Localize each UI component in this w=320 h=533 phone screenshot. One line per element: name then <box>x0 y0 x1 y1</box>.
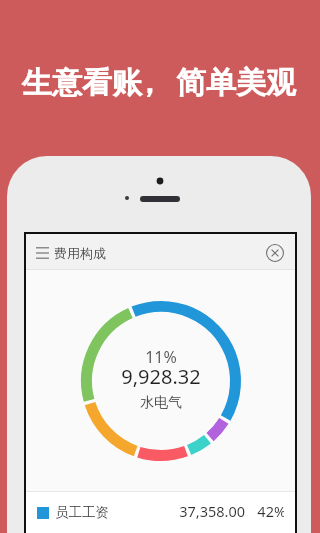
staticText: 水电气 <box>81 394 241 412</box>
staticText: 费用构成 <box>54 245 106 261</box>
staticText: 员工工资 <box>55 504 109 521</box>
staticText: ， <box>134 64 164 102</box>
staticText: 生意看账 <box>22 64 142 102</box>
button[interactable]: Menu <box>26 234 55 269</box>
staticText: 简单美观 <box>176 64 296 102</box>
button[interactable]: 员工工资 <box>26 492 295 533</box>
staticText: 42% <box>257 501 284 521</box>
staticText: 11% <box>81 346 241 368</box>
button[interactable]: Close <box>257 234 295 269</box>
staticText: 37,358.00 <box>175 501 245 521</box>
staticText: 9,928.32 <box>81 363 241 390</box>
